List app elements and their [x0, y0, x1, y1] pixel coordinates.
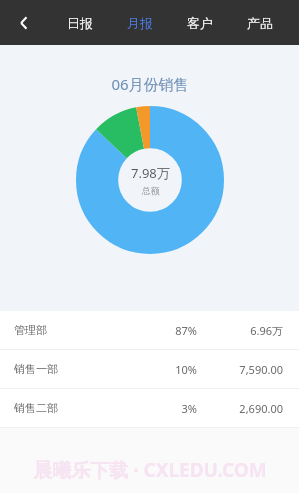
button[interactable]: 日报 — [63, 9, 97, 37]
staticText: 7,590.00 — [239, 362, 283, 377]
staticText: 2,690.00 — [239, 401, 283, 416]
staticText: 管理部 — [14, 323, 47, 337]
staticText: 销售一部 — [14, 362, 58, 376]
button[interactable]: 产品 — [243, 9, 277, 37]
staticText: 销售二部 — [14, 401, 58, 415]
staticText: 晨曦乐下载 · CXLEDU.COM — [33, 457, 267, 483]
button[interactable]: 月报 — [123, 9, 157, 37]
staticText: 总额 — [142, 185, 160, 196]
staticText: 87% — [175, 323, 197, 338]
staticText: 客户 — [187, 15, 213, 31]
staticText: 10% — [175, 362, 197, 377]
button[interactable]: 销售二部 — [0, 389, 299, 427]
button[interactable]: 销售一部 — [0, 350, 299, 388]
staticText: 6.96万 — [250, 323, 283, 338]
staticText: 日报 — [67, 15, 93, 31]
staticText: 月报 — [127, 15, 153, 31]
button[interactable]: 客户 — [183, 9, 217, 37]
staticText: 06月份销售 — [111, 74, 189, 94]
staticText: 3% — [181, 401, 197, 416]
button[interactable]: Back — [8, 7, 40, 39]
button[interactable]: 管理部 — [0, 311, 299, 349]
staticText: 7.98万 — [131, 164, 170, 182]
staticText: 产品 — [247, 15, 273, 31]
